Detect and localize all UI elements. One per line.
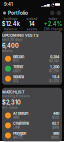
staticText: 1,200: [50, 64, 59, 69]
staticText: holdings: [4, 17, 18, 21]
staticText: MATIC: [13, 136, 23, 140]
button[interactable]: Settings: [56, 11, 61, 15]
button[interactable]: Search: [50, 11, 54, 15]
staticText: $2,310: [2, 99, 21, 106]
button[interactable]: Bitcoin: [2, 54, 62, 64]
staticText: 62.1: [52, 121, 59, 126]
staticText: ◔: [51, 2, 54, 7]
staticText: Polygon: [13, 131, 26, 136]
staticText: $12.4k: [2, 21, 20, 27]
staticText: tracking 6 tokens: [2, 94, 30, 98]
staticText: Bitcoin: [13, 54, 24, 59]
staticText: $3,010: [49, 79, 59, 83]
staticText: ▁▃▅: [41, 2, 50, 6]
staticText: 980: [53, 131, 59, 136]
staticText: ARB: [13, 116, 19, 120]
staticText: balance: [4, 27, 17, 31]
button[interactable]: Tether: [2, 64, 62, 74]
staticText: Chainlink: [13, 121, 29, 126]
staticText: SOL: [13, 79, 19, 83]
staticText: USDT: [13, 69, 21, 73]
staticText: today: [49, 17, 58, 21]
staticText: $512: [52, 116, 59, 120]
staticText: $880: [51, 136, 59, 140]
button[interactable]: Polygon: [2, 130, 62, 140]
staticText: 24h change: [44, 27, 63, 31]
staticText: BTC: [13, 59, 19, 63]
staticText: 18.4: [52, 74, 59, 79]
staticText: 0.284: [50, 54, 59, 59]
button[interactable]: Chainlink: [2, 120, 62, 130]
staticText: 9:41: [4, 2, 13, 7]
staticText: tokens: [2, 49, 13, 53]
staticText: $1,200: [49, 69, 59, 73]
staticText: Solana: [13, 74, 24, 79]
staticText: Arbitrum: [13, 111, 28, 116]
staticText: LINK: [13, 126, 20, 130]
staticText: WATCHLIST: [2, 90, 25, 94]
staticText: est. value: [2, 106, 18, 109]
staticText: 440: [53, 111, 59, 116]
staticText: $918: [52, 126, 59, 130]
staticText: 14: [29, 21, 35, 27]
staticText: next 30 days: [2, 38, 23, 41]
button[interactable]: Solana: [2, 74, 62, 84]
staticText: Portfolio: [8, 10, 28, 16]
staticText: UPCOMING VESTS: [2, 33, 39, 38]
staticText: assets: [26, 27, 37, 31]
staticText: 6,400: [2, 42, 19, 49]
button[interactable]: Account: [3, 11, 6, 14]
button[interactable]: Arbitrum: [2, 110, 62, 120]
staticText: staked: [26, 17, 37, 21]
staticText: $8,140: [49, 59, 59, 63]
staticText: +2.4%: [44, 21, 63, 27]
staticText: Tether: [13, 64, 23, 69]
